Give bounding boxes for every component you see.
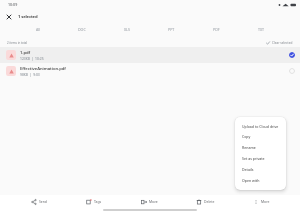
staticText: TXT bbox=[258, 27, 265, 32]
staticText: Move bbox=[149, 199, 158, 204]
staticText: Tags bbox=[94, 199, 102, 204]
staticText: More bbox=[261, 199, 270, 204]
button[interactable]: Move bbox=[121, 195, 177, 208]
button[interactable]: Select item bbox=[289, 52, 295, 58]
staticText: Delete bbox=[204, 199, 215, 204]
button[interactable]: Send bbox=[11, 195, 66, 208]
staticText: Clear selected bbox=[272, 41, 293, 45]
button[interactable]: 1.pdf bbox=[0, 47, 300, 63]
button[interactable]: Set as private bbox=[235, 153, 286, 164]
button[interactable]: More bbox=[233, 195, 289, 208]
staticText: 10:09 bbox=[8, 2, 18, 7]
button[interactable]: Rename bbox=[235, 142, 286, 153]
button[interactable]: XLS bbox=[104, 24, 149, 35]
staticText: Details bbox=[242, 167, 254, 172]
button[interactable]: All bbox=[16, 24, 60, 35]
staticText: 98KB | 9:03 bbox=[20, 72, 40, 76]
staticText: All bbox=[36, 27, 41, 32]
button[interactable]: Clear selected bbox=[266, 41, 293, 45]
button[interactable]: PDF bbox=[194, 24, 239, 35]
button[interactable]: PPT bbox=[149, 24, 194, 35]
staticText: Rename bbox=[242, 145, 256, 150]
button[interactable]: Upload to Cloud drive bbox=[235, 121, 286, 131]
staticText: Send bbox=[39, 199, 47, 204]
button[interactable]: TXT bbox=[239, 24, 284, 35]
button[interactable]: Open with bbox=[235, 175, 286, 186]
staticText: PPT bbox=[168, 27, 175, 32]
staticText: Upload to Cloud drive bbox=[242, 124, 279, 129]
staticText: 2 items in total bbox=[7, 41, 28, 45]
staticText: Open with bbox=[242, 178, 260, 183]
staticText: Set as private bbox=[242, 156, 265, 161]
button[interactable]: Select item bbox=[289, 68, 295, 74]
button[interactable]: Delete bbox=[177, 195, 233, 208]
staticText: 123KB | 10:25 bbox=[20, 56, 44, 60]
button[interactable]: EffectiveAnimation.pdf bbox=[0, 63, 300, 79]
staticText: PDF bbox=[213, 27, 220, 32]
staticText: 1.pdf bbox=[20, 50, 31, 56]
button[interactable]: Close bbox=[4, 12, 14, 22]
staticText: EffectiveAnimation.pdf bbox=[20, 66, 66, 72]
button[interactable]: DOC bbox=[60, 24, 104, 35]
staticText: DOC bbox=[78, 27, 86, 32]
staticText: Copy bbox=[242, 134, 251, 139]
staticText: 1 selected bbox=[18, 14, 38, 20]
button[interactable]: Copy bbox=[235, 131, 286, 142]
button[interactable]: Details bbox=[235, 164, 286, 175]
button[interactable]: Tags bbox=[66, 195, 121, 208]
staticText: XLS bbox=[124, 27, 130, 32]
